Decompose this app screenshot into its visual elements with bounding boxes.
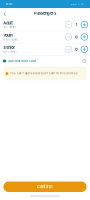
staticText: i	[84, 59, 85, 62]
staticText: You can't apply a discount card to this …	[10, 72, 78, 75]
staticText: Adult	[3, 21, 12, 25]
button[interactable]: Confirm	[3, 181, 87, 192]
staticText: 18+ years	[3, 25, 15, 29]
staticText: ▪▪▪ ⌁ ▭	[71, 2, 84, 5]
staticText: Add discount card	[8, 59, 36, 62]
staticText: 1	[75, 22, 77, 27]
staticText: 60+ years	[3, 50, 16, 53]
staticText: Confirm	[37, 184, 53, 189]
staticText: 9:41	[6, 2, 12, 5]
button[interactable]: Increase Youth	[79, 32, 89, 42]
button[interactable]: Decrease Youth	[63, 32, 73, 42]
staticText: Passengers	[34, 11, 56, 16]
button[interactable]: Increase Senior	[79, 44, 89, 54]
button[interactable]: Decrease Senior	[63, 44, 73, 54]
button[interactable]: Add discount card	[0, 56, 90, 66]
staticText: Youth	[3, 33, 12, 38]
button[interactable]: Increase Adult	[79, 20, 89, 30]
button[interactable]: Back	[0, 9, 9, 18]
staticText: ‹	[3, 9, 6, 18]
staticText: 0-25 years	[3, 38, 17, 41]
staticText: Senior	[3, 45, 15, 50]
button[interactable]: Decrease Adult	[63, 20, 73, 30]
staticText: 0	[75, 47, 78, 52]
staticText: 0	[75, 35, 78, 39]
